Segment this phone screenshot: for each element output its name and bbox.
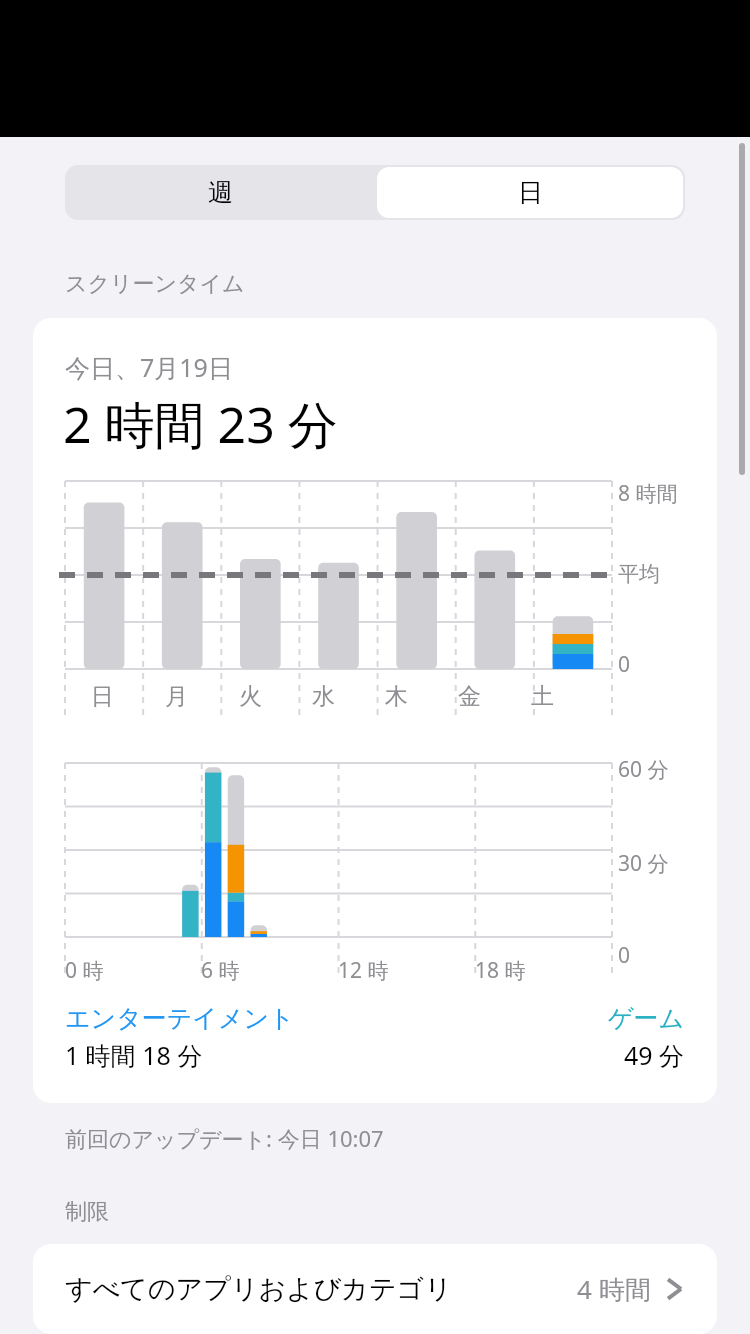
staticText: ゲーム	[608, 1003, 685, 1034]
button[interactable]: すべてのアプリおよびカテゴリ	[33, 1244, 717, 1334]
staticText: 火	[239, 682, 262, 711]
staticText: 12 時	[338, 956, 389, 985]
button[interactable]: ゲーム	[608, 1003, 685, 1072]
staticText: 前回のアップデート: 今日 10:07	[65, 1123, 384, 1153]
staticText: エンターテイメント	[65, 1003, 295, 1034]
staticText: 2 時間 23 分	[63, 390, 338, 458]
button[interactable]: 今日、7月19日	[33, 318, 717, 1103]
button[interactable]: エンターテイメント	[65, 1003, 608, 1072]
staticText: 60 分	[618, 755, 669, 784]
other: 詳細を開く	[665, 1274, 685, 1304]
staticText: スクリーンタイム	[65, 270, 245, 298]
staticText: 月	[165, 682, 188, 711]
staticText: 日	[91, 682, 114, 711]
staticText: 日	[518, 177, 543, 208]
staticText: 1 時間 18 分	[65, 1038, 203, 1072]
staticText: 30 分	[618, 849, 669, 878]
button[interactable]: 週	[65, 165, 375, 220]
staticText: 0 時	[65, 956, 104, 985]
staticText: 週	[208, 177, 233, 208]
staticText: 0	[618, 941, 631, 970]
staticText: 今日、7月19日	[65, 350, 233, 384]
staticText: 平均	[618, 561, 660, 587]
staticText: すべてのアプリおよびカテゴリ	[65, 1272, 577, 1306]
staticText: 金	[458, 682, 481, 711]
staticText: 0	[618, 650, 631, 679]
staticText: 49 分	[624, 1038, 685, 1072]
staticText: 制限	[65, 1198, 109, 1226]
staticText: 6 時	[201, 956, 240, 985]
staticText: 木	[385, 682, 408, 711]
staticText: 土	[531, 682, 554, 711]
staticText: 8 時間	[618, 479, 678, 508]
staticText: 水	[312, 682, 335, 711]
staticText: 18 時	[475, 956, 526, 985]
staticText: 4 時間	[577, 1271, 651, 1307]
button[interactable]: 日	[377, 167, 683, 218]
